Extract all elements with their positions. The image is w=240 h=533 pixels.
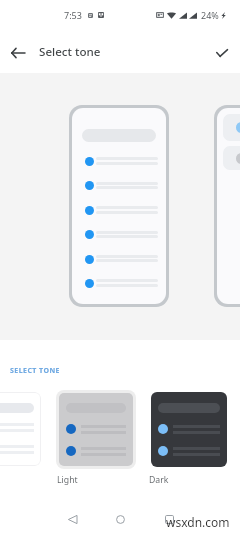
staticText: Dark (149, 474, 169, 486)
button[interactable] (151, 392, 227, 467)
staticText: 24% (201, 9, 219, 21)
button[interactable]: Back (58, 505, 86, 533)
button[interactable] (0, 392, 41, 466)
button[interactable]: Confirm (208, 39, 236, 67)
button[interactable] (59, 393, 133, 466)
staticText: SELECT TONE (10, 366, 60, 376)
staticText: Light (57, 474, 78, 486)
staticText: Select tone (39, 44, 101, 60)
button[interactable] (72, 108, 166, 304)
button[interactable] (217, 108, 240, 304)
button[interactable]: Recents (155, 505, 183, 533)
button[interactable]: Home (106, 505, 134, 533)
staticText: wsxdn.com (166, 514, 230, 530)
button[interactable]: Back (4, 39, 32, 67)
staticText: 7:53 (64, 9, 82, 21)
